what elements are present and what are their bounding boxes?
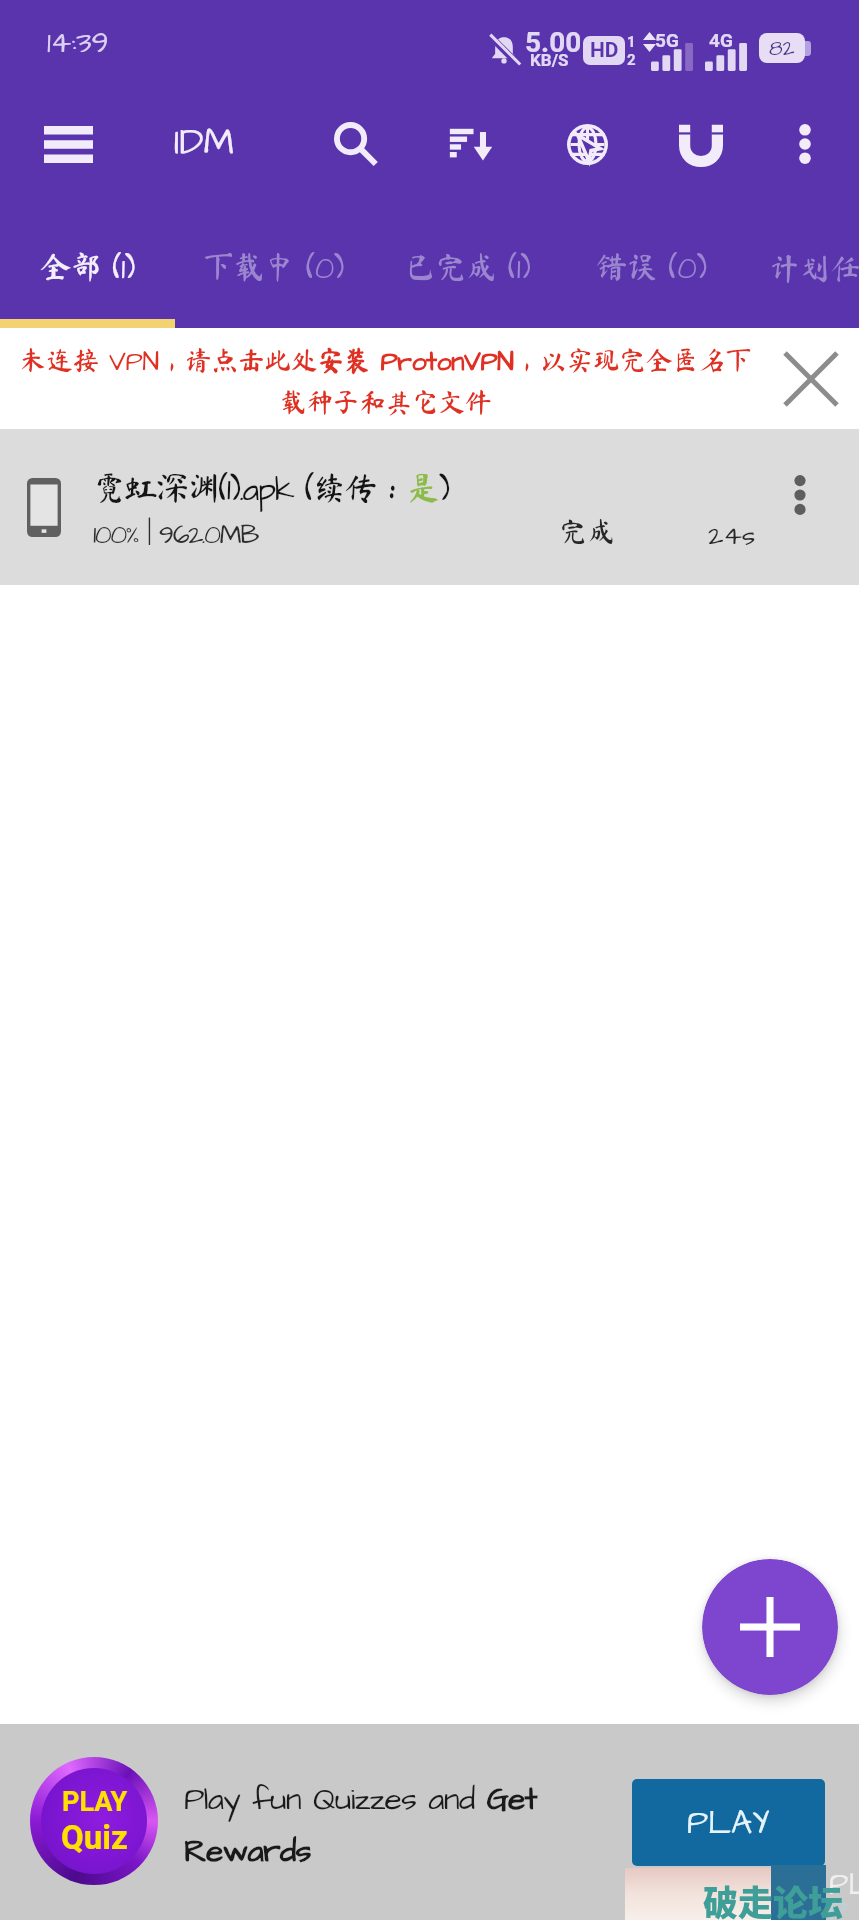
staticText: 下载中 (0) bbox=[203, 247, 344, 290]
button[interactable]: More options bbox=[766, 105, 844, 183]
staticText: 破走论坛 bbox=[703, 1875, 844, 1920]
staticText: P bbox=[829, 1892, 847, 1920]
button[interactable]: Open browser bbox=[548, 105, 626, 183]
staticText: HD bbox=[590, 38, 619, 63]
staticText: Play fun Quizzes and Get Rewards bbox=[184, 1777, 579, 1874]
button[interactable]: Download item options bbox=[772, 467, 828, 523]
staticText: IDM bbox=[174, 118, 235, 169]
staticText: 计划任务 bbox=[769, 253, 859, 284]
staticText: Quiz bbox=[61, 1818, 128, 1857]
button[interactable]: PLAY bbox=[632, 1779, 825, 1866]
staticText: 全部 (1) bbox=[40, 247, 135, 290]
staticText: 82 bbox=[769, 34, 795, 63]
button[interactable]: Play Quiz advert bbox=[30, 1757, 158, 1885]
staticText: 5.00 bbox=[525, 26, 582, 59]
staticText: 2 bbox=[627, 51, 636, 69]
button[interactable]: 计划任务 bbox=[730, 217, 859, 319]
staticText: PLAY bbox=[62, 1786, 128, 1818]
button[interactable]: 错误 (0) bbox=[560, 217, 743, 319]
button[interactable]: Add new download bbox=[702, 1559, 838, 1695]
button[interactable]: 霓虹深渊(1).apk (续传：是) bbox=[0, 429, 859, 585]
button[interactable]: Search bbox=[316, 105, 394, 183]
button[interactable]: Dismiss banner bbox=[763, 331, 859, 427]
staticText: 100% | 962.0MB bbox=[93, 516, 258, 554]
staticText: 5G bbox=[655, 29, 679, 51]
staticText: 错误 (0) bbox=[596, 247, 707, 290]
staticText: 4G bbox=[709, 29, 733, 51]
button[interactable]: 下载中 (0) bbox=[175, 217, 371, 319]
button[interactable]: Open navigation drawer bbox=[18, 94, 118, 194]
staticText: PL bbox=[829, 1864, 859, 1906]
button[interactable]: 未连接 VPN，请点击此处安装 ProtonVPN，以实现完全匿名下载种子和其它… bbox=[8, 343, 763, 415]
button[interactable]: Sort downloads bbox=[431, 105, 509, 183]
button[interactable]: 全部 (1) bbox=[0, 217, 175, 319]
staticText: 14:39 bbox=[47, 22, 109, 64]
staticText: KB/S bbox=[530, 50, 569, 70]
staticText: 完成 bbox=[559, 517, 616, 545]
button[interactable]: Add magnet link bbox=[662, 105, 740, 183]
staticText: PLAY bbox=[687, 1800, 770, 1846]
staticText: 未连接 VPN，请点击此处安装 ProtonVPN，以实现完全匿名下载种子和其它… bbox=[8, 343, 763, 415]
staticText: 霓虹深渊(1).apk (续传：是) bbox=[93, 467, 449, 513]
staticText: 1 bbox=[627, 33, 636, 51]
staticText: 已完成 (1) bbox=[405, 247, 531, 290]
staticText: 24s bbox=[708, 517, 756, 555]
button[interactable]: 已完成 (1) bbox=[370, 217, 566, 319]
